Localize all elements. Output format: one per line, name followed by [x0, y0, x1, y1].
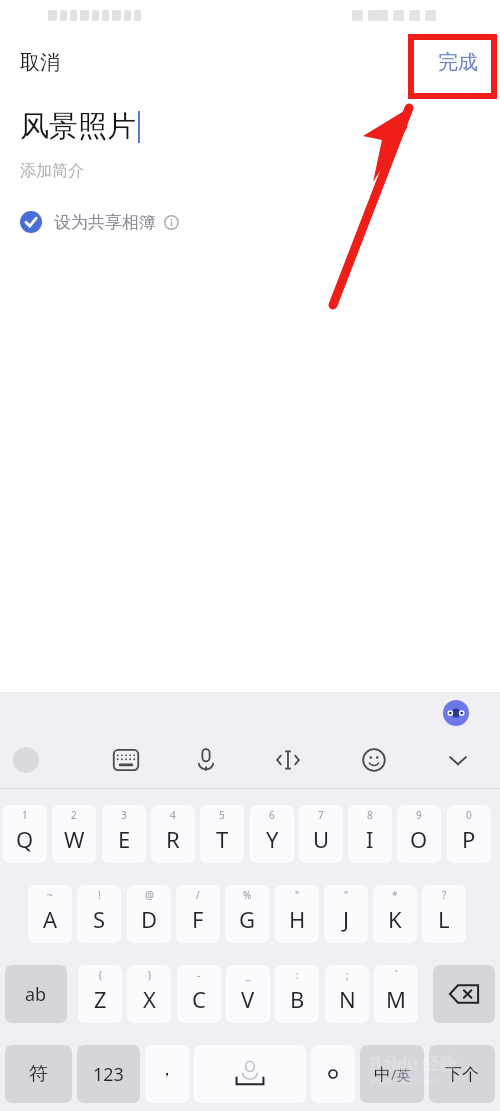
button[interactable]: Keyboard [108, 742, 144, 778]
button[interactable]: ` [374, 965, 418, 1023]
button[interactable]: 设为共享相簿 [20, 209, 187, 235]
staticText: P [462, 824, 476, 854]
button[interactable]: 1 [3, 805, 47, 863]
staticText: A [43, 904, 58, 934]
button[interactable]: Hide keyboard [440, 742, 476, 778]
staticText: H [289, 904, 306, 934]
staticText: F [192, 904, 204, 934]
button[interactable]: Space [194, 1045, 306, 1103]
staticText: D [141, 904, 158, 934]
button[interactable]: ? [422, 885, 466, 943]
button[interactable]: " [275, 885, 319, 943]
staticText: 完成 [438, 50, 478, 75]
staticText: ) [148, 968, 151, 982]
staticText: Baidu 经验 [370, 1052, 457, 1075]
staticText: 0 [466, 808, 472, 822]
staticText: 取消 [20, 50, 60, 75]
staticText: K [388, 904, 402, 934]
staticText: Y [266, 824, 279, 854]
staticText: 2 [71, 808, 77, 822]
staticText: 设为共享相簿 [54, 212, 156, 233]
staticText: 中 [374, 1064, 391, 1085]
staticText: /英 [391, 1065, 411, 1084]
button[interactable]: ( [78, 965, 122, 1023]
button[interactable]: ! [77, 885, 121, 943]
button[interactable]: _ [226, 965, 270, 1023]
button[interactable]: : [275, 965, 319, 1023]
staticText: Q [16, 824, 34, 854]
staticText: V [241, 984, 255, 1014]
button[interactable]: ab [5, 965, 67, 1023]
staticText: ab [25, 982, 47, 1007]
staticText: S [93, 904, 106, 934]
staticText: 符 [29, 1062, 48, 1086]
button[interactable]: 123 [77, 1045, 140, 1103]
staticText: _ [246, 968, 251, 982]
staticText: 添加简介 [20, 161, 84, 181]
staticText: " [295, 888, 300, 902]
staticText: W [64, 824, 85, 854]
button[interactable]: 中 [360, 1045, 424, 1103]
button[interactable]: ， [145, 1045, 189, 1103]
staticText: ( [99, 968, 102, 982]
button[interactable]: ~ [28, 885, 72, 943]
staticText: X [143, 984, 156, 1014]
staticText: ` [395, 968, 398, 982]
staticText: - [197, 968, 201, 982]
button[interactable]: / [176, 885, 220, 943]
staticText: ， [158, 1058, 176, 1081]
button[interactable]: 完成 [428, 44, 488, 81]
button[interactable]: Emoji [356, 742, 392, 778]
staticText: jingyan.baidu.com [370, 1075, 440, 1086]
button[interactable]: 符 [5, 1045, 72, 1103]
staticText: 下个 [445, 1064, 479, 1085]
staticText: B [290, 984, 305, 1014]
staticText: N [339, 984, 356, 1014]
button[interactable]: 2 [52, 805, 96, 863]
staticText: U [313, 824, 330, 854]
staticText: / [196, 888, 200, 902]
staticText: : [296, 968, 299, 982]
button[interactable]: % [225, 885, 269, 943]
staticText: L [438, 904, 450, 934]
button[interactable]: 7 [299, 805, 343, 863]
button[interactable]: Voice input [188, 742, 224, 778]
staticText: E [118, 824, 131, 854]
button[interactable]: Move cursor [270, 742, 306, 778]
staticText: T [216, 824, 229, 854]
staticText: 7 [318, 808, 324, 822]
staticText: 1 [22, 808, 28, 822]
button[interactable]: Backspace [433, 965, 495, 1023]
button[interactable]: " [324, 885, 368, 943]
button[interactable]: - [177, 965, 221, 1023]
button[interactable] [311, 1045, 355, 1103]
staticText: ; [346, 968, 349, 982]
button[interactable]: 9 [397, 805, 441, 863]
staticText: R [166, 824, 180, 854]
button[interactable]: 取消 [8, 44, 72, 81]
staticText: 3 [121, 808, 127, 822]
button[interactable]: 4 [151, 805, 195, 863]
button[interactable]: 3 [102, 805, 146, 863]
staticText: ~ [47, 888, 53, 902]
staticText: 9 [416, 808, 422, 822]
button[interactable]: 8 [348, 805, 392, 863]
button[interactable]: Input method [8, 742, 44, 778]
staticText: O [410, 824, 428, 854]
staticText: I [366, 824, 374, 854]
staticText: C [192, 984, 206, 1014]
staticText: Z [94, 984, 107, 1014]
button[interactable]: 下个 [429, 1045, 495, 1103]
button[interactable]: ; [325, 965, 369, 1023]
button[interactable]: * [373, 885, 417, 943]
button[interactable]: ) [127, 965, 171, 1023]
staticText: 4 [170, 808, 176, 822]
staticText: 123 [93, 1062, 124, 1087]
button[interactable]: @ [127, 885, 171, 943]
staticText: 5 [219, 808, 225, 822]
button[interactable]: 0 [447, 805, 491, 863]
staticText: 风景照片 [20, 108, 136, 145]
button[interactable]: 6 [250, 805, 294, 863]
button[interactable]: 5 [200, 805, 244, 863]
staticText: J [343, 904, 350, 934]
